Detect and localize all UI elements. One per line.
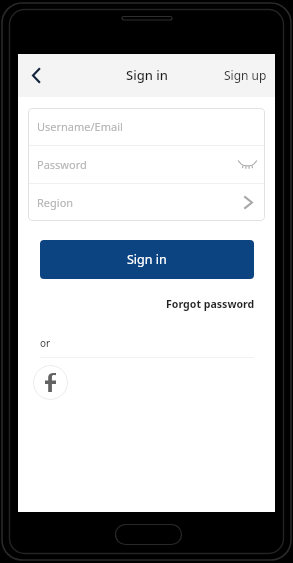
button[interactable]: Password: [28, 146, 265, 183]
staticText: Sign in: [127, 251, 167, 268]
button[interactable]: Username/Email: [28, 108, 265, 145]
button[interactable]: Back: [18, 57, 54, 93]
staticText: Forgot password: [166, 297, 255, 311]
button[interactable]: Region: [28, 184, 265, 221]
staticText: or: [40, 336, 51, 350]
button[interactable]: Sign in: [40, 240, 254, 279]
button[interactable]: Forgot password: [166, 297, 255, 311]
button[interactable]: Sign up: [213, 57, 275, 93]
button[interactable]: Sign in with Facebook: [33, 365, 68, 400]
staticText: Sign in: [126, 66, 168, 84]
staticText: Username/Email: [37, 119, 265, 134]
staticText: Sign up: [224, 67, 267, 83]
staticText: Region: [37, 195, 244, 210]
staticText: Password: [37, 157, 238, 172]
